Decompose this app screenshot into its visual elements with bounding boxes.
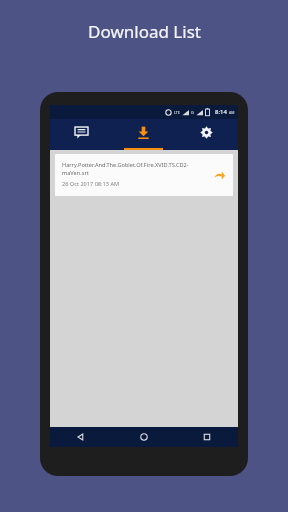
button[interactable]: Home [112, 427, 175, 447]
button[interactable]: Settings [175, 119, 238, 150]
staticText: Download List [88, 20, 201, 43]
staticText: G [191, 110, 194, 115]
button[interactable]: Recents [175, 427, 238, 447]
button[interactable]: Downloads [112, 119, 175, 150]
button[interactable]: Messages [50, 119, 112, 150]
button[interactable]: Share [213, 169, 226, 182]
button[interactable]: Back [50, 427, 112, 447]
staticText: AM [229, 110, 235, 115]
staticText: 8:14 [215, 108, 227, 116]
staticText: 26 Oct 2017 08:13 AM [62, 180, 120, 188]
staticText: Harry.Potter.And.The.Goblet.Of.Fire.XVID… [62, 161, 207, 177]
staticText: LTE [174, 110, 180, 115]
button[interactable]: Harry.Potter.And.The.Goblet.Of.Fire.XVID… [55, 154, 233, 196]
